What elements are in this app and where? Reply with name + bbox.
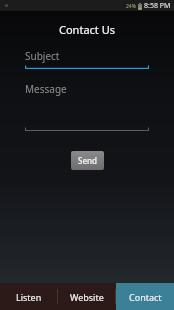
staticText: Send <box>78 155 97 166</box>
button[interactable]: Website <box>58 283 116 310</box>
staticText: Website <box>70 291 104 303</box>
button[interactable]: Contact <box>116 283 174 310</box>
button[interactable]: Subject <box>25 49 149 69</box>
staticText: Message <box>25 82 67 96</box>
staticText: 24% <box>126 3 136 10</box>
button[interactable]: Listen <box>0 283 58 310</box>
staticText: Listen <box>16 291 42 303</box>
staticText: Contact <box>129 291 162 303</box>
staticText: Subject <box>25 49 60 63</box>
button[interactable]: Message <box>25 82 149 131</box>
staticText: 8:58 PM <box>144 1 171 11</box>
button[interactable]: Send <box>71 151 104 170</box>
staticText: Contact Us <box>0 22 174 37</box>
